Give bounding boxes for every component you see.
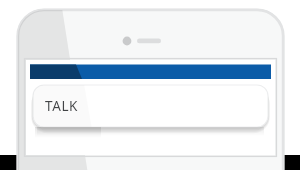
button[interactable]: Phone mockup showing TALK card [0, 0, 300, 170]
